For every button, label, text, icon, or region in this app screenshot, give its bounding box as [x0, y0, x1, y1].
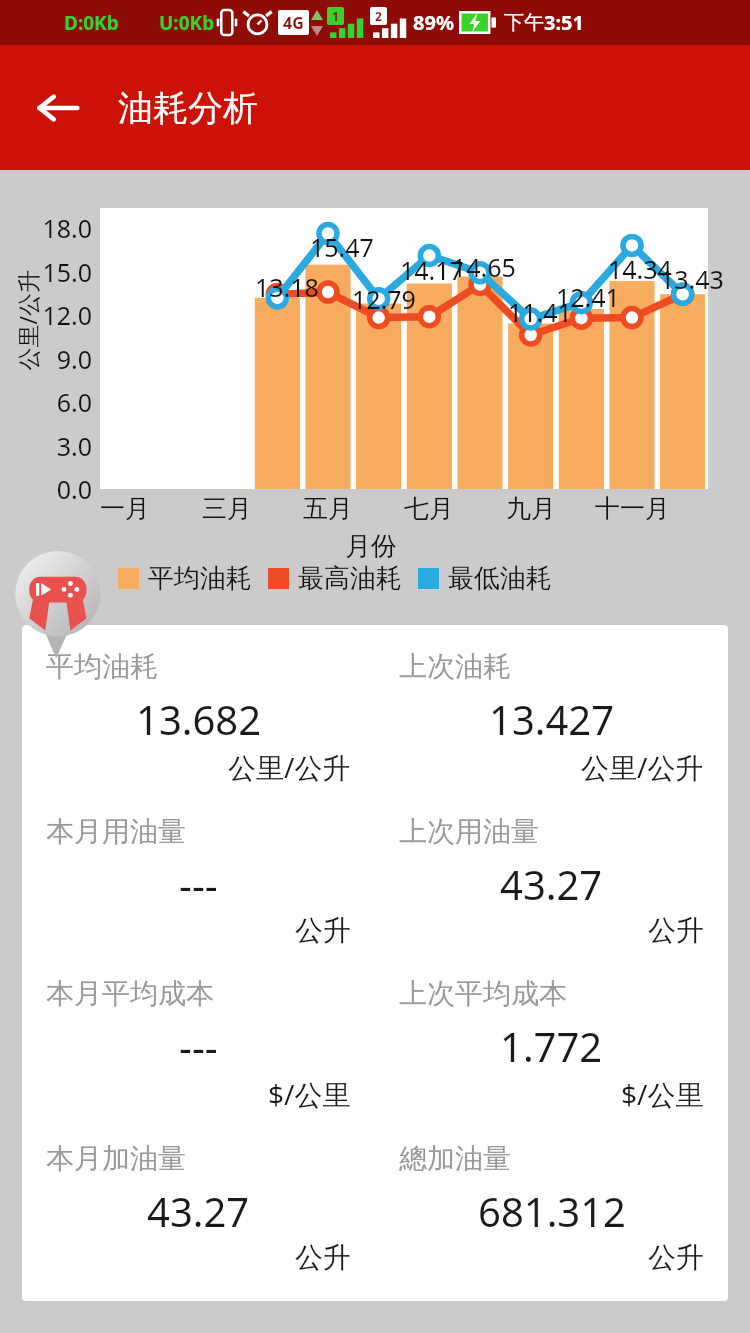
staticText: $/公里: [621, 1075, 704, 1113]
staticText: 1.772: [500, 1019, 603, 1073]
staticText: 13.427: [489, 692, 615, 746]
staticText: $/公里: [268, 1075, 351, 1113]
staticText: 681.312: [478, 1184, 626, 1238]
staticText: 本月用油量: [46, 814, 186, 849]
staticText: D:0Kb: [64, 10, 119, 36]
staticText: 公升: [295, 1240, 351, 1275]
staticText: 1: [332, 8, 339, 24]
staticText: 43.27: [500, 857, 603, 911]
staticText: U:0Kb: [159, 10, 215, 36]
staticText: 總加油量: [399, 1141, 511, 1176]
button[interactable]: 總加油量: [375, 1141, 728, 1275]
staticText: 2: [375, 8, 382, 24]
staticText: 公里/公升: [228, 748, 351, 786]
staticText: 上次平均成本: [399, 976, 567, 1011]
staticText: 3:51: [544, 9, 584, 36]
staticText: 15.0: [42, 255, 92, 289]
staticText: 最低油耗: [448, 562, 552, 595]
button[interactable]: 平均油耗: [22, 649, 375, 786]
staticText: 七月: [404, 493, 454, 524]
staticText: 6.0: [56, 385, 92, 419]
button[interactable]: 上次用油量: [375, 814, 728, 948]
staticText: 下午: [504, 10, 544, 35]
staticText: 三月: [202, 493, 252, 524]
staticText: 11.41: [508, 295, 572, 329]
staticText: 18.0: [42, 211, 92, 245]
staticText: 13.682: [136, 692, 262, 746]
staticText: 43.27: [147, 1184, 250, 1238]
button[interactable]: Back: [24, 74, 92, 142]
staticText: 3.0: [56, 429, 92, 463]
staticText: 上次用油量: [399, 814, 539, 849]
button[interactable]: 上次油耗: [375, 649, 728, 786]
staticText: 公升: [648, 913, 704, 948]
staticText: 公里/公升: [11, 269, 41, 370]
staticText: 五月: [303, 493, 353, 524]
staticText: 油耗分析: [118, 86, 258, 130]
staticText: 平均油耗: [46, 649, 158, 684]
button[interactable]: 本月平均成本: [22, 976, 375, 1113]
staticText: 13.43: [660, 262, 724, 296]
staticText: 本月平均成本: [46, 976, 214, 1011]
staticText: 89%: [413, 9, 454, 36]
staticText: 12.41: [556, 280, 620, 314]
staticText: ---: [179, 857, 218, 911]
staticText: 4G: [283, 12, 304, 34]
staticText: 14.34: [608, 252, 672, 286]
button[interactable]: 上次平均成本: [375, 976, 728, 1113]
staticText: 九月: [506, 493, 556, 524]
staticText: 公升: [648, 1240, 704, 1275]
staticText: 12.79: [352, 282, 416, 316]
button[interactable]: 本月用油量: [22, 814, 375, 948]
staticText: 本月加油量: [46, 1141, 186, 1176]
staticText: 平均油耗: [148, 562, 252, 595]
staticText: 12.0: [42, 298, 92, 332]
staticText: 0.0: [56, 472, 92, 506]
staticText: ---: [179, 1019, 218, 1073]
staticText: 公升: [295, 913, 351, 948]
staticText: 月份: [345, 530, 397, 563]
button[interactable]: Game assistant: [10, 548, 114, 652]
staticText: 上次油耗: [399, 649, 511, 684]
staticText: 十一月: [595, 493, 670, 524]
staticText: 9.0: [56, 342, 92, 376]
staticText: 一月: [100, 493, 150, 524]
staticText: 公里/公升: [581, 748, 704, 786]
staticText: 14.65: [452, 250, 516, 284]
staticText: 14.17: [400, 253, 464, 287]
button[interactable]: 本月加油量: [22, 1141, 375, 1275]
staticText: 15.47: [310, 230, 374, 264]
staticText: 最高油耗: [298, 562, 402, 595]
staticText: 13.18: [255, 270, 319, 304]
